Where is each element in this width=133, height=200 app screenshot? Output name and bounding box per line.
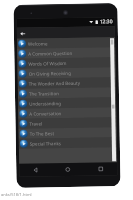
button[interactable]: The Transition [18,87,116,99]
staticText: The Transition [29,90,59,97]
staticText: Understanding [29,100,61,107]
button[interactable]: Back [18,29,28,39]
staticText: A Common Question [28,50,72,57]
staticText: The Wonder And Beauty [29,80,81,87]
button[interactable]: Recents [84,162,117,176]
staticText: A Conversation [29,110,62,117]
button[interactable]: Special Thanks [19,137,117,149]
staticText: anks/518/1.html [1,192,32,197]
staticText: Special Thanks [30,140,62,147]
staticText: Welcome [28,40,48,47]
button[interactable]: Home [51,163,84,176]
staticText: Travel [29,120,42,127]
staticText: Words Of Wisdom [28,60,67,67]
button[interactable]: Understanding [18,97,116,109]
button[interactable]: Words Of Wisdom [17,57,116,69]
button[interactable]: Back [19,163,51,177]
staticText: To The Best [30,130,55,137]
button[interactable]: A Conversation [18,107,116,119]
staticText: 12:30 [100,18,113,25]
button[interactable]: Travel [18,117,117,129]
staticText: On Giving Receiving [29,70,72,77]
button[interactable]: On Giving Receiving [17,67,116,79]
button[interactable]: To The Best [19,127,117,139]
button[interactable]: A Common Question [17,47,115,59]
button[interactable]: The Wonder And Beauty [18,77,116,89]
button[interactable]: Welcome [17,37,115,49]
